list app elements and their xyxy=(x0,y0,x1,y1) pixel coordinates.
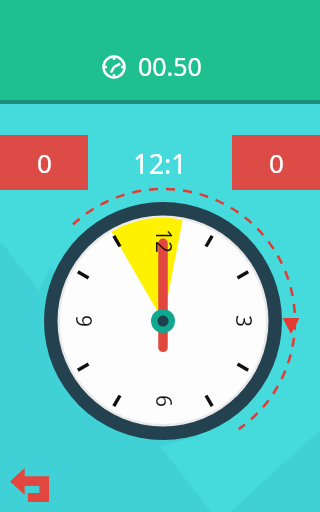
button[interactable]: 0 xyxy=(232,135,320,190)
staticText: 0 xyxy=(37,145,52,180)
button[interactable]: Back xyxy=(9,463,55,509)
staticText: 12 xyxy=(149,228,177,253)
staticText: 6 xyxy=(149,394,177,407)
button[interactable]: 0 xyxy=(0,135,88,190)
staticText: 9 xyxy=(69,314,97,327)
button[interactable]: Clock xyxy=(0,0,320,512)
staticText: 3 xyxy=(229,314,257,327)
button[interactable]: Timer xyxy=(101,54,127,80)
staticText: 12:1 xyxy=(133,145,187,182)
staticText: 0 xyxy=(269,145,284,180)
staticText: 00.50 xyxy=(138,49,202,83)
